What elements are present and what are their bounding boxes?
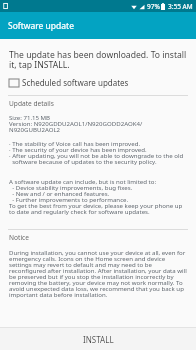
button[interactable]: Software update (0, 12, 196, 39)
staticText: During installation, you cannot use your… (9, 248, 187, 298)
staticText: Scheduled software updates (22, 77, 129, 88)
staticText: Notice (9, 233, 29, 242)
staticText: A software update can include, but is no… (9, 177, 183, 215)
staticText: · The stability of Voice call has been i… (9, 139, 184, 165)
staticText: Size: 71.15 MB Version: N920GDDU2AOL1/N9… (9, 113, 143, 133)
staticText: The update has been downloaded. To insta… (9, 50, 189, 70)
staticText: Update details (9, 99, 54, 108)
staticText: 97% (147, 2, 160, 11)
staticText: Software update (8, 20, 74, 32)
staticText: 3:55 AM (168, 2, 193, 11)
button[interactable]: Scheduled software updates (9, 77, 196, 88)
staticText: INSTALL (83, 334, 114, 345)
button[interactable]: INSTALL (0, 328, 196, 350)
